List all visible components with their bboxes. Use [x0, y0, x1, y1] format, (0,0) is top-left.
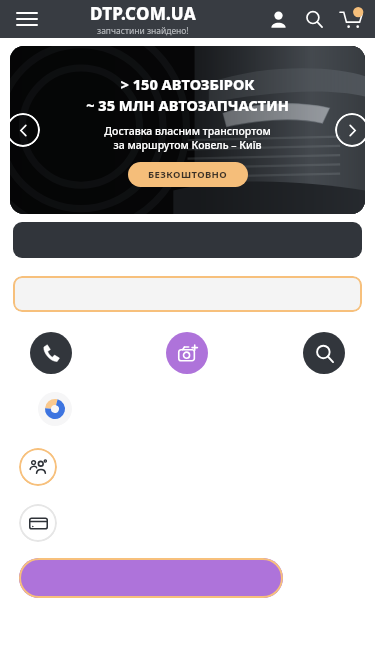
button[interactable]: Menu	[10, 2, 44, 36]
button[interactable]: Cart	[335, 3, 367, 35]
staticText: > 150 АВТОЗБІРОК	[120, 74, 255, 94]
button[interactable]: Search	[299, 4, 329, 34]
button[interactable]: Search	[303, 332, 345, 374]
button[interactable]: > 150 АВТОЗБІРОК	[10, 46, 365, 214]
staticText: запчастини знайдено!	[97, 25, 189, 37]
button[interactable]: Call	[30, 332, 72, 374]
staticText: Доставка власним транспортом	[104, 124, 271, 138]
staticText: ~ 35 МЛН АВТОЗАПЧАСТИН	[86, 95, 289, 115]
button[interactable]: Account	[263, 4, 293, 34]
staticText: за маршрутом Ковель – Київ	[113, 138, 262, 152]
button[interactable]: DTP.COM.UA	[90, 2, 196, 37]
button[interactable]: Option	[19, 504, 57, 542]
button[interactable]	[13, 222, 362, 258]
button[interactable]: Previous	[6, 113, 40, 147]
button[interactable]: Next	[335, 113, 369, 147]
button[interactable]: Progress	[38, 392, 72, 426]
button[interactable]: Option	[19, 448, 57, 486]
button[interactable]	[13, 276, 362, 312]
button[interactable]: Add photo	[166, 332, 208, 374]
button[interactable]: Primary action	[19, 558, 283, 598]
button[interactable]: БЕЗКОШТОВНО	[128, 162, 248, 187]
staticText: DTP.COM.UA	[90, 2, 196, 25]
staticText: БЕЗКОШТОВНО	[148, 168, 228, 181]
